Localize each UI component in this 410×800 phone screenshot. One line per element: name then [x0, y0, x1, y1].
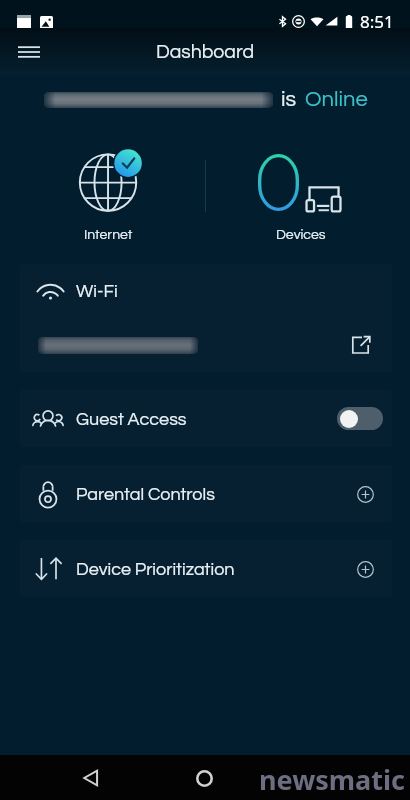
staticText: 8:51: [360, 10, 394, 33]
staticText: Device Prioritization: [76, 560, 235, 579]
staticText: Online: [305, 88, 368, 111]
button[interactable]: Device Prioritization: [20, 540, 392, 597]
button[interactable]: Back: [74, 761, 108, 795]
staticText: Devices: [276, 228, 326, 242]
staticText: Internet: [84, 228, 133, 242]
staticText: Parental Controls: [76, 485, 215, 504]
button[interactable]: Open navigation menu: [9, 32, 49, 72]
staticText: Guest Access: [76, 410, 187, 429]
button[interactable]: Home: [187, 761, 221, 795]
staticText: Dashboard: [156, 42, 255, 62]
button[interactable]: Add: [347, 551, 383, 587]
button[interactable]: Add: [347, 476, 383, 512]
button[interactable]: Internet: [50, 145, 166, 245]
button[interactable]: Share Wi-Fi: [343, 327, 379, 363]
button[interactable]: Share Wi-Fi: [20, 318, 392, 372]
staticText: Wi-Fi: [76, 282, 118, 301]
button[interactable]: Wi-Fi: [20, 264, 392, 318]
button[interactable]: Devices: [242, 145, 358, 245]
button[interactable]: Guest Access: [20, 390, 392, 447]
staticText: newsmatic: [259, 761, 406, 798]
staticText: is: [281, 88, 297, 111]
button[interactable]: Parental Controls: [20, 465, 392, 522]
